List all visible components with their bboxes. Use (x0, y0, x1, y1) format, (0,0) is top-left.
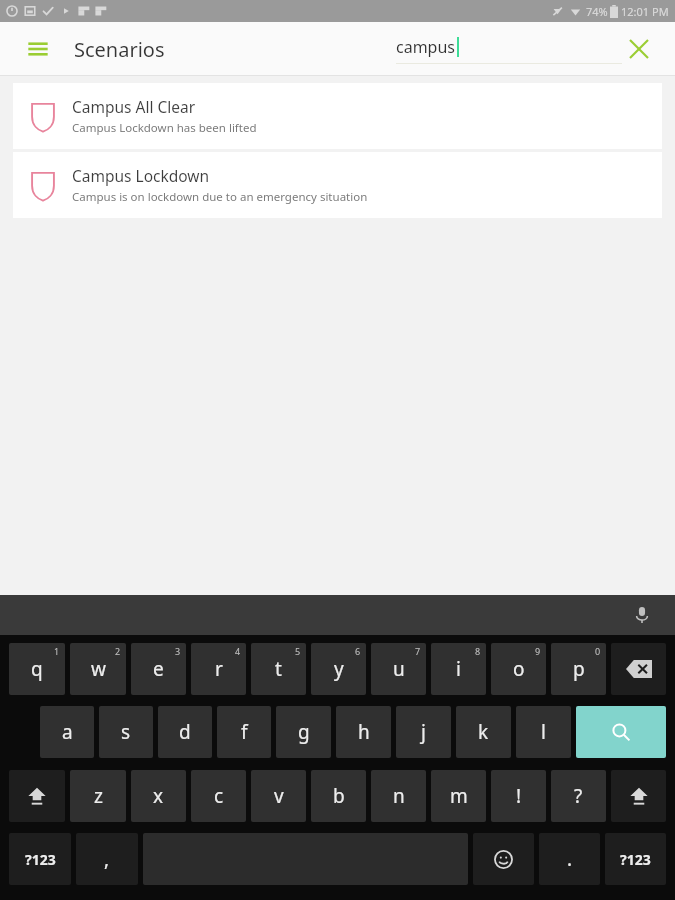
staticText: z (94, 783, 103, 809)
button[interactable]: w (70, 643, 126, 695)
staticText: t (275, 656, 282, 682)
button[interactable]: Voice input (627, 600, 657, 630)
button[interactable]: Shift (9, 770, 65, 822)
button[interactable]: , (76, 833, 138, 885)
button[interactable]: m (431, 770, 486, 822)
button[interactable]: f (217, 706, 271, 758)
staticText: w (91, 656, 106, 682)
staticText: 9 (535, 645, 541, 657)
button[interactable]: r (191, 643, 246, 695)
button[interactable]: Open navigation menu (20, 31, 56, 67)
staticText: c (214, 783, 224, 809)
button[interactable]: z (70, 770, 126, 822)
button[interactable]: u (371, 643, 426, 695)
staticText: Campus is on lockdown due to an emergenc… (72, 189, 368, 205)
staticText: g (298, 719, 310, 745)
staticText: 5 (295, 645, 301, 657)
button[interactable]: a (40, 706, 94, 758)
staticText: s (121, 719, 131, 745)
button[interactable]: ?123 (605, 833, 666, 885)
button[interactable]: n (371, 770, 426, 822)
staticText: v (274, 783, 284, 809)
button[interactable]: c (191, 770, 246, 822)
button[interactable]: p (551, 643, 606, 695)
staticText: r (215, 656, 223, 682)
button[interactable]: s (99, 706, 153, 758)
staticText: 1 (54, 645, 60, 657)
button[interactable]: q (9, 643, 65, 695)
staticText: 2 (115, 645, 121, 657)
staticText: n (393, 783, 405, 809)
staticText: l (541, 719, 546, 745)
button[interactable]: Shift (611, 770, 666, 822)
button[interactable]: . (539, 833, 600, 885)
staticText: o (513, 656, 525, 682)
staticText: Campus Lockdown (72, 165, 210, 186)
staticText: b (333, 783, 345, 809)
button[interactable]: Clear search (619, 29, 659, 69)
button[interactable]: o (491, 643, 546, 695)
staticText: 6 (355, 645, 361, 657)
staticText: q (31, 656, 43, 682)
staticText: p (573, 656, 585, 682)
staticText: Scenarios (74, 36, 165, 63)
staticText: 7 (415, 645, 421, 657)
button[interactable]: i (431, 643, 486, 695)
staticText: 0 (595, 645, 601, 657)
staticText: campus (396, 36, 456, 58)
staticText: Campus Lockdown has been lifted (72, 120, 257, 136)
staticText: k (478, 719, 489, 745)
button[interactable]: Campus Lockdown (13, 152, 662, 218)
staticText: a (62, 719, 73, 745)
button[interactable]: Emoji (473, 833, 534, 885)
button[interactable]: ? (551, 770, 606, 822)
staticText: Campus All Clear (72, 96, 196, 117)
button[interactable]: ! (491, 770, 546, 822)
staticText: ? (574, 783, 583, 809)
staticText: 3 (175, 645, 181, 657)
staticText: 4 (235, 645, 241, 657)
staticText: 12:01 PM (621, 4, 669, 19)
staticText: 8 (475, 645, 481, 657)
button[interactable]: Backspace (611, 643, 666, 695)
staticText: i (456, 656, 461, 682)
button[interactable]: v (251, 770, 306, 822)
staticText: e (153, 656, 164, 682)
button[interactable]: d (158, 706, 212, 758)
button[interactable]: Search (576, 706, 666, 758)
staticText: x (153, 783, 164, 809)
button[interactable]: e (131, 643, 186, 695)
staticText: , (104, 846, 110, 872)
staticText: ?123 (620, 850, 651, 869)
staticText: . (567, 846, 573, 872)
staticText: u (393, 656, 405, 682)
button[interactable]: k (456, 706, 511, 758)
button[interactable]: ?123 (9, 833, 71, 885)
button[interactable]: x (131, 770, 186, 822)
button[interactable]: l (516, 706, 571, 758)
button[interactable]: t (251, 643, 306, 695)
button[interactable]: y (311, 643, 366, 695)
button[interactable]: j (396, 706, 451, 758)
button[interactable]: b (311, 770, 366, 822)
staticText: m (450, 783, 468, 809)
staticText: j (421, 719, 426, 745)
button[interactable]: h (336, 706, 391, 758)
staticText: y (334, 656, 344, 682)
button[interactable]: Campus All Clear (13, 83, 662, 149)
staticText: ! (516, 783, 522, 809)
staticText: d (179, 719, 191, 745)
staticText: h (358, 719, 370, 745)
staticText: ?123 (25, 850, 56, 869)
button[interactable]: g (276, 706, 331, 758)
staticText: 74% (586, 4, 608, 19)
staticText: f (241, 719, 248, 745)
